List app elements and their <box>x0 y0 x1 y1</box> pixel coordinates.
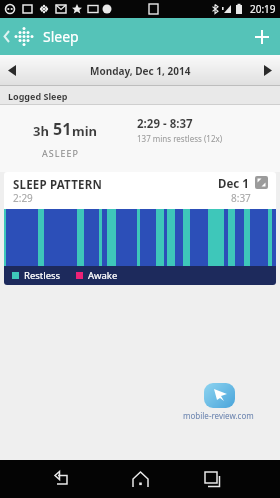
staticText: SLEEP PATTERN <box>13 177 102 193</box>
staticText: 8:37 <box>231 191 251 205</box>
button[interactable]: 3h <box>0 105 280 172</box>
staticText: Logged Sleep <box>8 90 68 102</box>
button[interactable] <box>172 460 252 498</box>
staticText: Awake <box>88 269 118 282</box>
button[interactable] <box>100 460 180 498</box>
staticText: 2:29 - 8:37 <box>137 116 193 132</box>
staticText: Monday, Dec 1, 2014 <box>90 64 191 78</box>
staticText: 137 mins restless (12x) <box>137 133 223 144</box>
button[interactable]: Monday, Dec 1, 2014 <box>0 55 280 86</box>
staticText: 2:29 <box>13 191 33 205</box>
staticText: Restless <box>24 269 61 282</box>
button[interactable] <box>243 18 280 55</box>
staticText: Sleep <box>43 27 79 46</box>
staticText: 20:19 <box>250 2 276 16</box>
staticText: mobile-review.com <box>183 410 254 421</box>
staticText: Dec 1 <box>218 176 249 192</box>
staticText: 3h <box>33 122 53 140</box>
staticText: ASLEEP <box>42 147 79 159</box>
button[interactable]: SLEEP PATTERN <box>4 172 276 285</box>
staticText: 51 <box>53 118 72 140</box>
staticText: min <box>72 122 98 140</box>
button[interactable] <box>0 18 40 55</box>
button[interactable] <box>22 460 102 498</box>
